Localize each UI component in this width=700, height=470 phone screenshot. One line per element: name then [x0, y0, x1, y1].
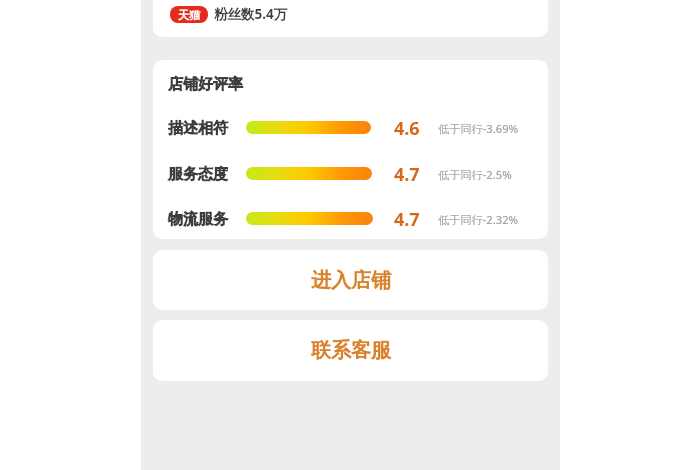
other: Tmall flagship store [170, 6, 208, 23]
staticText: 低于同行-2.5% [438, 167, 512, 182]
button[interactable]: 联系客服 [153, 320, 548, 381]
staticText: 进入店铺 [311, 268, 391, 293]
staticText: 低于同行-3.69% [438, 121, 519, 136]
staticText: 粉丝数5.4万 [214, 5, 288, 23]
staticText: 物流服务 [168, 210, 228, 229]
staticText: 描述相符 [168, 119, 228, 138]
button[interactable]: Tmall flagship store [153, 0, 548, 37]
button[interactable]: 进入店铺 [153, 250, 548, 310]
staticText: 联系客服 [311, 338, 391, 363]
staticText: 天猫 [178, 8, 200, 22]
staticText: 4.7 [394, 207, 420, 231]
staticText: 4.7 [394, 162, 420, 186]
staticText: 4.6 [394, 116, 420, 140]
staticText: 店铺好评率 [168, 75, 243, 94]
staticText: 低于同行-2.32% [438, 212, 519, 227]
staticText: 服务态度 [168, 165, 228, 184]
